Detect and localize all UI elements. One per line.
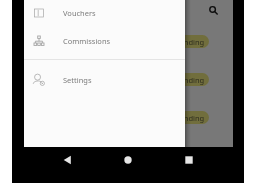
staticText: Vouchers — [63, 8, 96, 18]
button[interactable]: Back — [61, 153, 75, 167]
button[interactable]: Pending — [29, 25, 229, 58]
button[interactable]: Pending — [29, 101, 229, 134]
staticText: Commissions — [63, 36, 111, 46]
button[interactable]: Pending — [29, 63, 229, 96]
staticText: Pending — [175, 75, 205, 85]
staticText: Pending — [175, 37, 205, 47]
button[interactable]: Vouchers — [24, 0, 185, 27]
button[interactable]: Settings — [24, 66, 185, 94]
staticText: Pending — [175, 113, 205, 123]
staticText: Settings — [63, 75, 92, 85]
button[interactable]: Search — [205, 2, 221, 18]
button[interactable]: Commissions — [24, 27, 185, 55]
button[interactable]: Home — [121, 153, 135, 167]
button[interactable]: Recent apps — [182, 153, 196, 167]
